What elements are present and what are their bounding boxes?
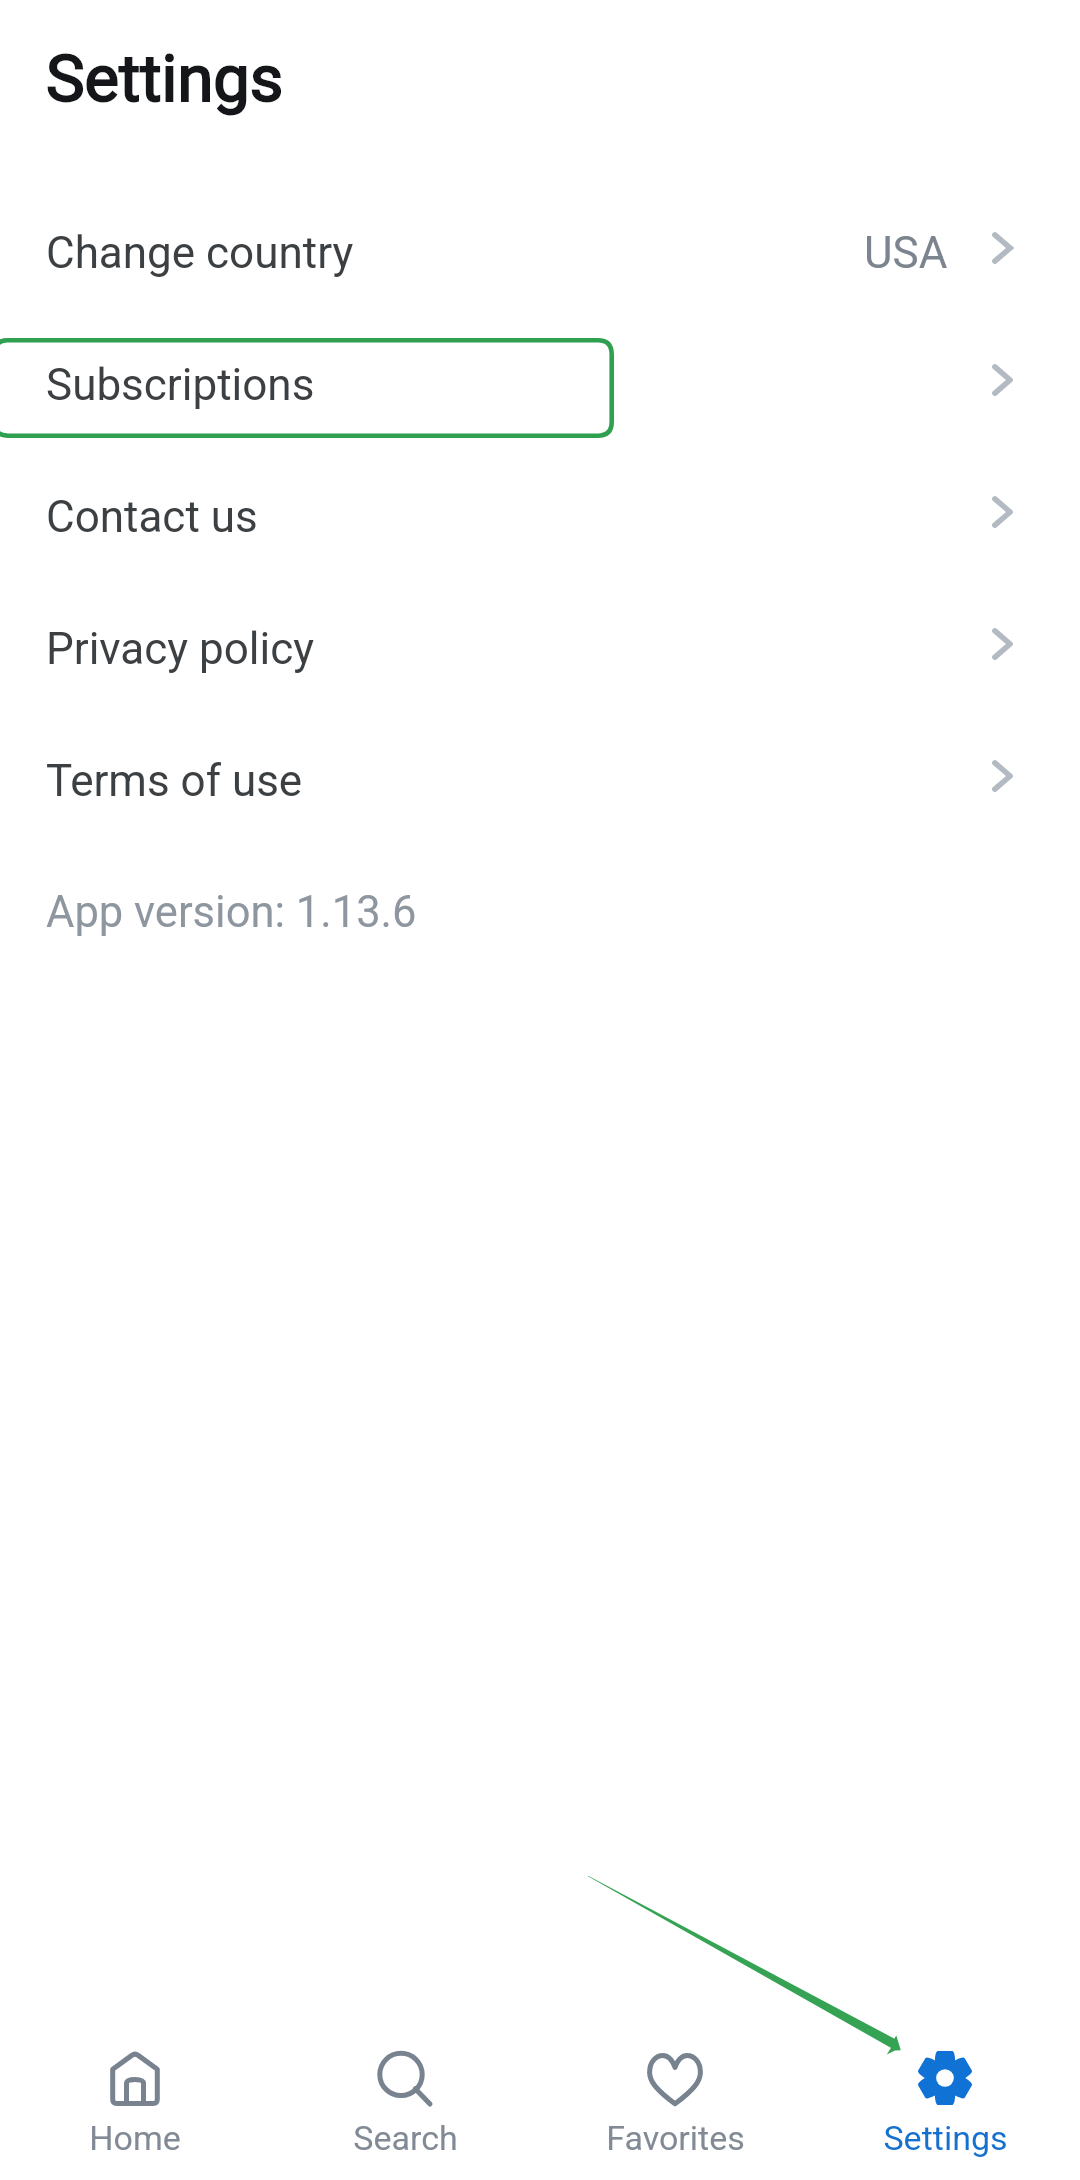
button[interactable]: Privacy policy xyxy=(0,582,1080,714)
staticText: Settings xyxy=(46,41,284,117)
staticText: Privacy policy xyxy=(46,623,315,675)
button[interactable]: Subscriptions xyxy=(0,318,1080,450)
staticText: USA xyxy=(864,227,948,279)
button[interactable]: Search xyxy=(270,1988,540,2180)
staticText: Home xyxy=(89,2118,181,2158)
staticText: Favorites xyxy=(606,2118,745,2158)
staticText: Contact us xyxy=(46,491,258,543)
staticText: App version: 1.13.6 xyxy=(46,887,417,938)
staticText: Subscriptions xyxy=(46,359,315,411)
button[interactable]: Contact us xyxy=(0,450,1080,582)
button[interactable]: Favorites xyxy=(540,1988,810,2180)
staticText: Terms of use xyxy=(46,755,303,807)
staticText: Change country xyxy=(46,227,354,279)
button[interactable]: Terms of use xyxy=(0,714,1080,846)
staticText: Search xyxy=(353,2118,458,2158)
staticText: Settings xyxy=(883,2118,1008,2158)
button[interactable]: Home xyxy=(0,1988,270,2180)
button[interactable]: Change country xyxy=(0,186,1080,318)
button[interactable]: Settings xyxy=(810,1988,1080,2180)
